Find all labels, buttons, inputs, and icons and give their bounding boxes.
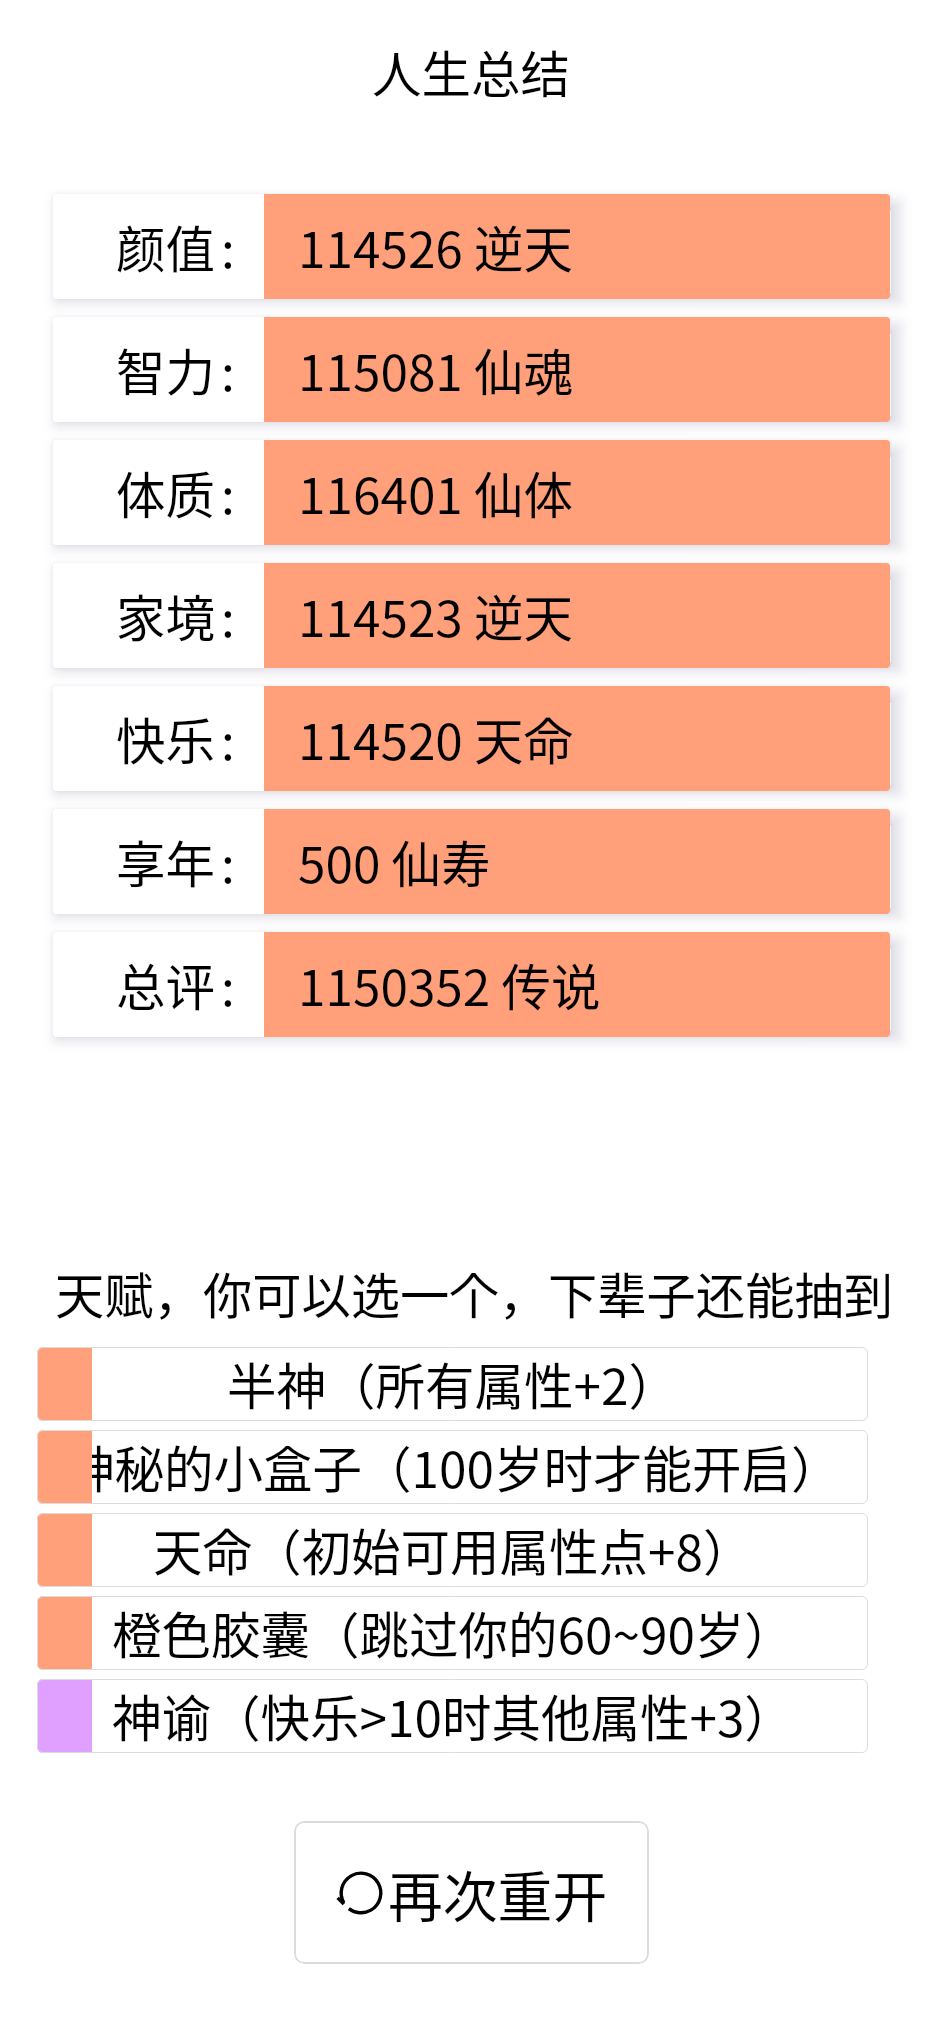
button[interactable]: 神谕（快乐>10时其他属性+3）	[37, 1679, 868, 1753]
staticText: 116401 仙体	[298, 457, 573, 529]
staticText: :	[221, 334, 235, 406]
staticText: 1150352 传说	[298, 949, 601, 1021]
staticText: :	[221, 457, 235, 529]
button[interactable]: 家境	[53, 563, 890, 668]
button[interactable]: 总评	[53, 932, 890, 1037]
button[interactable]: 天命（初始可用属性点+8）	[37, 1513, 868, 1587]
staticText: 114526 逆天	[298, 211, 573, 283]
staticText: :	[221, 949, 235, 1021]
staticText: 天赋，你可以选一个，下辈子还能抽到	[55, 1257, 894, 1328]
staticText: 神谕（快乐>10时其他属性+3）	[112, 1680, 794, 1752]
staticText: :	[221, 826, 235, 898]
button[interactable]: 颜值	[53, 194, 890, 299]
button[interactable]: 智力	[53, 317, 890, 422]
button[interactable]: 橙色胶囊（跳过你的60~90岁）	[37, 1596, 868, 1670]
staticText: 神秘的小盒子（100岁时才能开启）	[65, 1431, 841, 1503]
button[interactable]: 再次重开	[294, 1821, 649, 1964]
staticText: 半神（所有属性+2）	[227, 1348, 678, 1420]
staticText: 享年	[116, 826, 215, 898]
other: 再次重开	[335, 1867, 387, 1919]
staticText: 家境	[116, 580, 215, 652]
button[interactable]: 享年	[53, 809, 890, 914]
staticText: 再次重开	[388, 1853, 608, 1932]
staticText: 114520 天命	[298, 703, 573, 775]
button[interactable]: 半神（所有属性+2）	[37, 1347, 868, 1421]
staticText: 体质	[116, 457, 215, 529]
button[interactable]: 体质	[53, 440, 890, 545]
staticText: 快乐	[116, 703, 215, 775]
staticText: 总评	[116, 949, 215, 1021]
staticText: 橙色胶囊（跳过你的60~90岁）	[112, 1597, 794, 1669]
button[interactable]: 神秘的小盒子（100岁时才能开启）	[37, 1430, 868, 1504]
staticText: 颜值	[116, 211, 215, 283]
staticText: 天命（初始可用属性点+8）	[153, 1514, 753, 1586]
staticText: 500 仙寿	[298, 826, 491, 898]
staticText: :	[221, 211, 235, 283]
staticText: :	[221, 703, 235, 775]
staticText: :	[221, 580, 235, 652]
staticText: 智力	[116, 334, 215, 406]
staticText: 人生总结	[372, 36, 570, 108]
staticText: 115081 仙魂	[298, 334, 573, 406]
button[interactable]: 快乐	[53, 686, 890, 791]
staticText: 114523 逆天	[298, 580, 573, 652]
